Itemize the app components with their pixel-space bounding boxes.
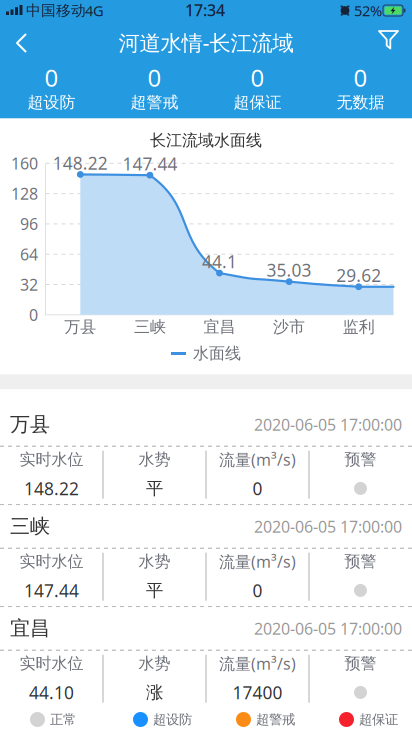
button[interactable]: 0	[0, 63, 103, 118]
staticText: 实时水位	[19, 654, 83, 673]
staticText: 0	[29, 304, 38, 325]
staticText: 128	[11, 183, 38, 204]
staticText: 4G	[85, 1, 104, 20]
staticText: 0	[353, 62, 367, 93]
staticText: 预警	[344, 450, 376, 469]
button[interactable]: 超保证	[309, 705, 412, 734]
staticText: 44.1	[202, 250, 237, 273]
staticText: 水势	[138, 450, 170, 469]
staticText: 平	[146, 478, 163, 499]
staticText: 29.62	[336, 264, 381, 287]
staticText: 超警戒	[256, 711, 295, 728]
staticText: 32	[20, 274, 38, 295]
staticText: 147.44	[24, 579, 79, 602]
staticText: 流量(m³/s)	[219, 551, 296, 572]
staticText: 0	[44, 62, 58, 93]
staticText: 流量(m³/s)	[219, 449, 296, 470]
staticText: 2020-06-05 17:00:00	[254, 414, 402, 435]
staticText: 0	[252, 579, 262, 602]
button[interactable]: 超警戒	[206, 705, 309, 734]
staticText: 148.22	[53, 151, 108, 174]
staticText: 超保证	[233, 93, 281, 112]
staticText: 水面线	[193, 344, 241, 363]
staticText: 2020-06-05 17:00:00	[254, 516, 402, 537]
staticText: 万县	[10, 412, 50, 437]
staticText: 中国移动	[26, 1, 86, 19]
staticText: 长江流域水面线	[150, 131, 262, 150]
staticText: 河道水情-长江流域	[118, 28, 293, 57]
button[interactable]: 0	[206, 63, 309, 118]
button[interactable]: Back	[1, 21, 41, 63]
staticText: 35.03	[267, 259, 312, 282]
staticText: 预警	[344, 654, 376, 673]
staticText: 0	[147, 62, 161, 93]
staticText: 17:34	[185, 0, 225, 21]
button[interactable]: Filter	[370, 21, 412, 63]
staticText: 沙市	[273, 317, 305, 337]
button[interactable]: 超设防	[103, 705, 206, 734]
staticText: 96	[20, 213, 38, 234]
staticText: 平	[146, 580, 163, 601]
staticText: 三峡	[134, 317, 166, 337]
staticText: 无数据	[336, 93, 384, 112]
staticText: 宜昌	[10, 616, 50, 641]
staticText: 涨	[146, 682, 163, 703]
staticText: 监利	[343, 317, 375, 337]
staticText: 实时水位	[19, 450, 83, 469]
staticText: 实时水位	[19, 552, 83, 571]
staticText: 超保证	[359, 711, 398, 728]
staticText: 超警戒	[130, 93, 178, 112]
button[interactable]: 0	[309, 63, 412, 118]
staticText: 超设防	[27, 93, 75, 112]
staticText: 160	[11, 153, 38, 174]
staticText: 52%	[354, 1, 382, 20]
staticText: 0	[252, 477, 262, 500]
button[interactable]: 万县	[0, 403, 412, 505]
staticText: 超设防	[153, 711, 192, 728]
staticText: 64	[20, 244, 38, 265]
staticText: 148.22	[24, 477, 79, 500]
staticText: 水势	[138, 552, 170, 571]
staticText: 17400	[232, 681, 282, 704]
staticText: 万县	[64, 317, 96, 337]
button[interactable]: 0	[103, 63, 206, 118]
staticText: 预警	[344, 552, 376, 571]
staticText: 水势	[138, 654, 170, 673]
staticText: 0	[250, 62, 264, 93]
button[interactable]: 宜昌	[0, 607, 412, 709]
staticText: 44.10	[29, 681, 74, 704]
staticText: 2020-06-05 17:00:00	[254, 618, 402, 639]
staticText: 流量(m³/s)	[219, 653, 296, 674]
staticText: 147.44	[122, 152, 177, 175]
button[interactable]: 正常	[0, 705, 103, 734]
staticText: 正常	[50, 711, 76, 728]
staticText: 宜昌	[203, 317, 235, 337]
button[interactable]: 三峡	[0, 505, 412, 607]
staticText: 三峡	[10, 514, 50, 539]
